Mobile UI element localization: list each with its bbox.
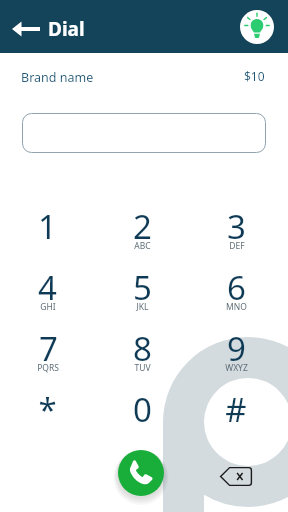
staticText: 4 <box>38 265 57 310</box>
staticText: 3 <box>227 204 246 249</box>
staticText: # <box>225 387 247 432</box>
staticText: DEF <box>229 240 245 252</box>
staticText: JKL <box>136 301 149 313</box>
staticText: PQRS <box>37 362 59 374</box>
staticText: 7 <box>39 326 58 371</box>
button[interactable]: 8 <box>95 326 189 387</box>
button[interactable]: 7 <box>0 326 95 387</box>
button[interactable]: Tips <box>240 10 274 44</box>
button[interactable]: Back <box>5 5 46 49</box>
staticText: * <box>38 387 57 432</box>
button[interactable]: 1 <box>0 204 95 265</box>
staticText: 8 <box>133 326 152 371</box>
button[interactable]: 4 <box>0 265 95 326</box>
staticText: $10 <box>244 68 265 84</box>
staticText: 6 <box>227 265 246 310</box>
staticText: WXYZ <box>225 362 248 374</box>
staticText: 1 <box>38 204 57 249</box>
staticText: 0 <box>133 387 152 432</box>
button[interactable]: Phone number <box>22 113 266 153</box>
button[interactable]: * <box>0 387 95 448</box>
button[interactable]: 2 <box>95 204 189 265</box>
staticText: Brand name <box>21 69 94 86</box>
button[interactable]: 5 <box>95 265 189 326</box>
button[interactable]: Backspace <box>213 460 259 492</box>
button[interactable]: 9 <box>189 326 283 387</box>
button[interactable]: 0 <box>95 387 189 448</box>
button[interactable]: 6 <box>189 265 283 326</box>
staticText: 5 <box>133 265 152 310</box>
staticText: MNO <box>226 301 247 313</box>
staticText: Dial <box>48 16 85 42</box>
staticText: GHI <box>40 301 56 313</box>
button[interactable]: 3 <box>189 204 283 265</box>
button[interactable]: Call <box>118 450 164 496</box>
staticText: TUV <box>134 362 151 374</box>
staticText: ABC <box>134 240 151 252</box>
button[interactable]: # <box>189 387 283 448</box>
staticText: 9 <box>227 326 246 371</box>
staticText: 2 <box>133 204 152 249</box>
